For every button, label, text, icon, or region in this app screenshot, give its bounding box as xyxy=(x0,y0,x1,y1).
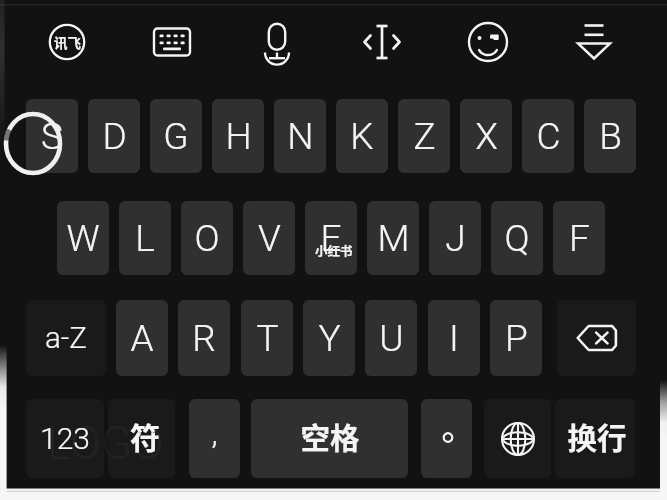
button[interactable]: R xyxy=(178,300,230,376)
staticText: E xyxy=(320,217,342,260)
button[interactable]: 换行 xyxy=(555,399,635,478)
staticText: , xyxy=(211,414,218,452)
button[interactable]: W xyxy=(57,201,109,275)
staticText: 123 xyxy=(40,421,90,456)
button[interactable]: K xyxy=(336,99,388,173)
staticText: LOGO xyxy=(47,416,164,470)
button[interactable]: Move cursor xyxy=(356,16,408,68)
staticText: 空格 xyxy=(300,415,360,458)
button[interactable]: M xyxy=(367,201,419,275)
staticText: T xyxy=(256,317,279,360)
staticText: L xyxy=(135,217,155,260)
staticText: a-Z xyxy=(45,321,87,356)
staticText: G xyxy=(163,115,189,158)
staticText: X xyxy=(475,115,498,158)
staticText: R xyxy=(192,317,216,360)
staticText: 符 xyxy=(130,414,160,457)
button[interactable]: D xyxy=(88,99,140,173)
button[interactable]: I xyxy=(428,300,480,376)
button[interactable]: Z xyxy=(398,99,450,173)
staticText: 小红书 xyxy=(315,241,353,259)
staticText: U xyxy=(379,317,404,360)
staticText: A xyxy=(130,317,154,360)
staticText: Y xyxy=(318,317,341,360)
staticText: 换行 xyxy=(567,415,627,458)
staticText: H xyxy=(225,115,252,158)
button[interactable]: P xyxy=(490,300,542,376)
button[interactable] xyxy=(421,399,472,478)
button[interactable]: O xyxy=(181,201,233,275)
button[interactable]: B xyxy=(584,99,636,173)
button[interactable]: Hide keyboard xyxy=(568,16,620,68)
staticText: P xyxy=(505,317,528,360)
button[interactable]: F xyxy=(553,201,605,275)
staticText: W xyxy=(66,217,100,260)
button[interactable]: Input method settings xyxy=(41,16,93,68)
button[interactable]: 符 xyxy=(108,399,175,478)
staticText: D xyxy=(102,115,127,158)
button[interactable]: Switch input language xyxy=(484,399,551,478)
button[interactable]: A xyxy=(116,300,168,376)
button[interactable]: Keyboard layout xyxy=(146,16,198,68)
button[interactable]: J xyxy=(429,201,481,275)
staticText: B xyxy=(599,115,622,158)
staticText: M xyxy=(377,217,410,260)
button[interactable]: X xyxy=(460,99,512,173)
button[interactable]: Voice input xyxy=(251,16,303,68)
button[interactable]: V xyxy=(243,201,295,275)
button[interactable]: E xyxy=(305,201,357,275)
button[interactable]: H xyxy=(212,99,264,173)
button[interactable]: N xyxy=(274,99,326,173)
button[interactable]: Emoji xyxy=(462,16,514,68)
staticText: N xyxy=(287,115,314,158)
staticText: Z xyxy=(413,115,436,158)
staticText: O xyxy=(194,217,220,260)
button[interactable]: 空格 xyxy=(251,399,408,478)
button[interactable]: G xyxy=(150,99,202,173)
button[interactable]: Delete xyxy=(557,300,636,376)
staticText: C xyxy=(536,115,561,158)
button[interactable]: a-Z xyxy=(26,300,106,376)
staticText: I xyxy=(449,317,459,360)
button[interactable]: U xyxy=(365,300,417,376)
staticText: J xyxy=(445,217,466,260)
button[interactable]: Q xyxy=(491,201,543,275)
staticText: F xyxy=(569,217,590,260)
button[interactable]: 123 xyxy=(26,399,104,478)
staticText: V xyxy=(258,217,281,260)
button[interactable]: , xyxy=(189,399,240,478)
button[interactable]: S xyxy=(26,99,78,173)
button[interactable]: C xyxy=(522,99,574,173)
staticText: K xyxy=(350,115,374,158)
staticText: 讯飞 xyxy=(54,32,81,52)
button[interactable]: L xyxy=(119,201,171,275)
staticText: Q xyxy=(504,217,530,260)
button[interactable]: T xyxy=(241,300,293,376)
button[interactable]: Y xyxy=(303,300,355,376)
staticText: S xyxy=(41,115,63,158)
